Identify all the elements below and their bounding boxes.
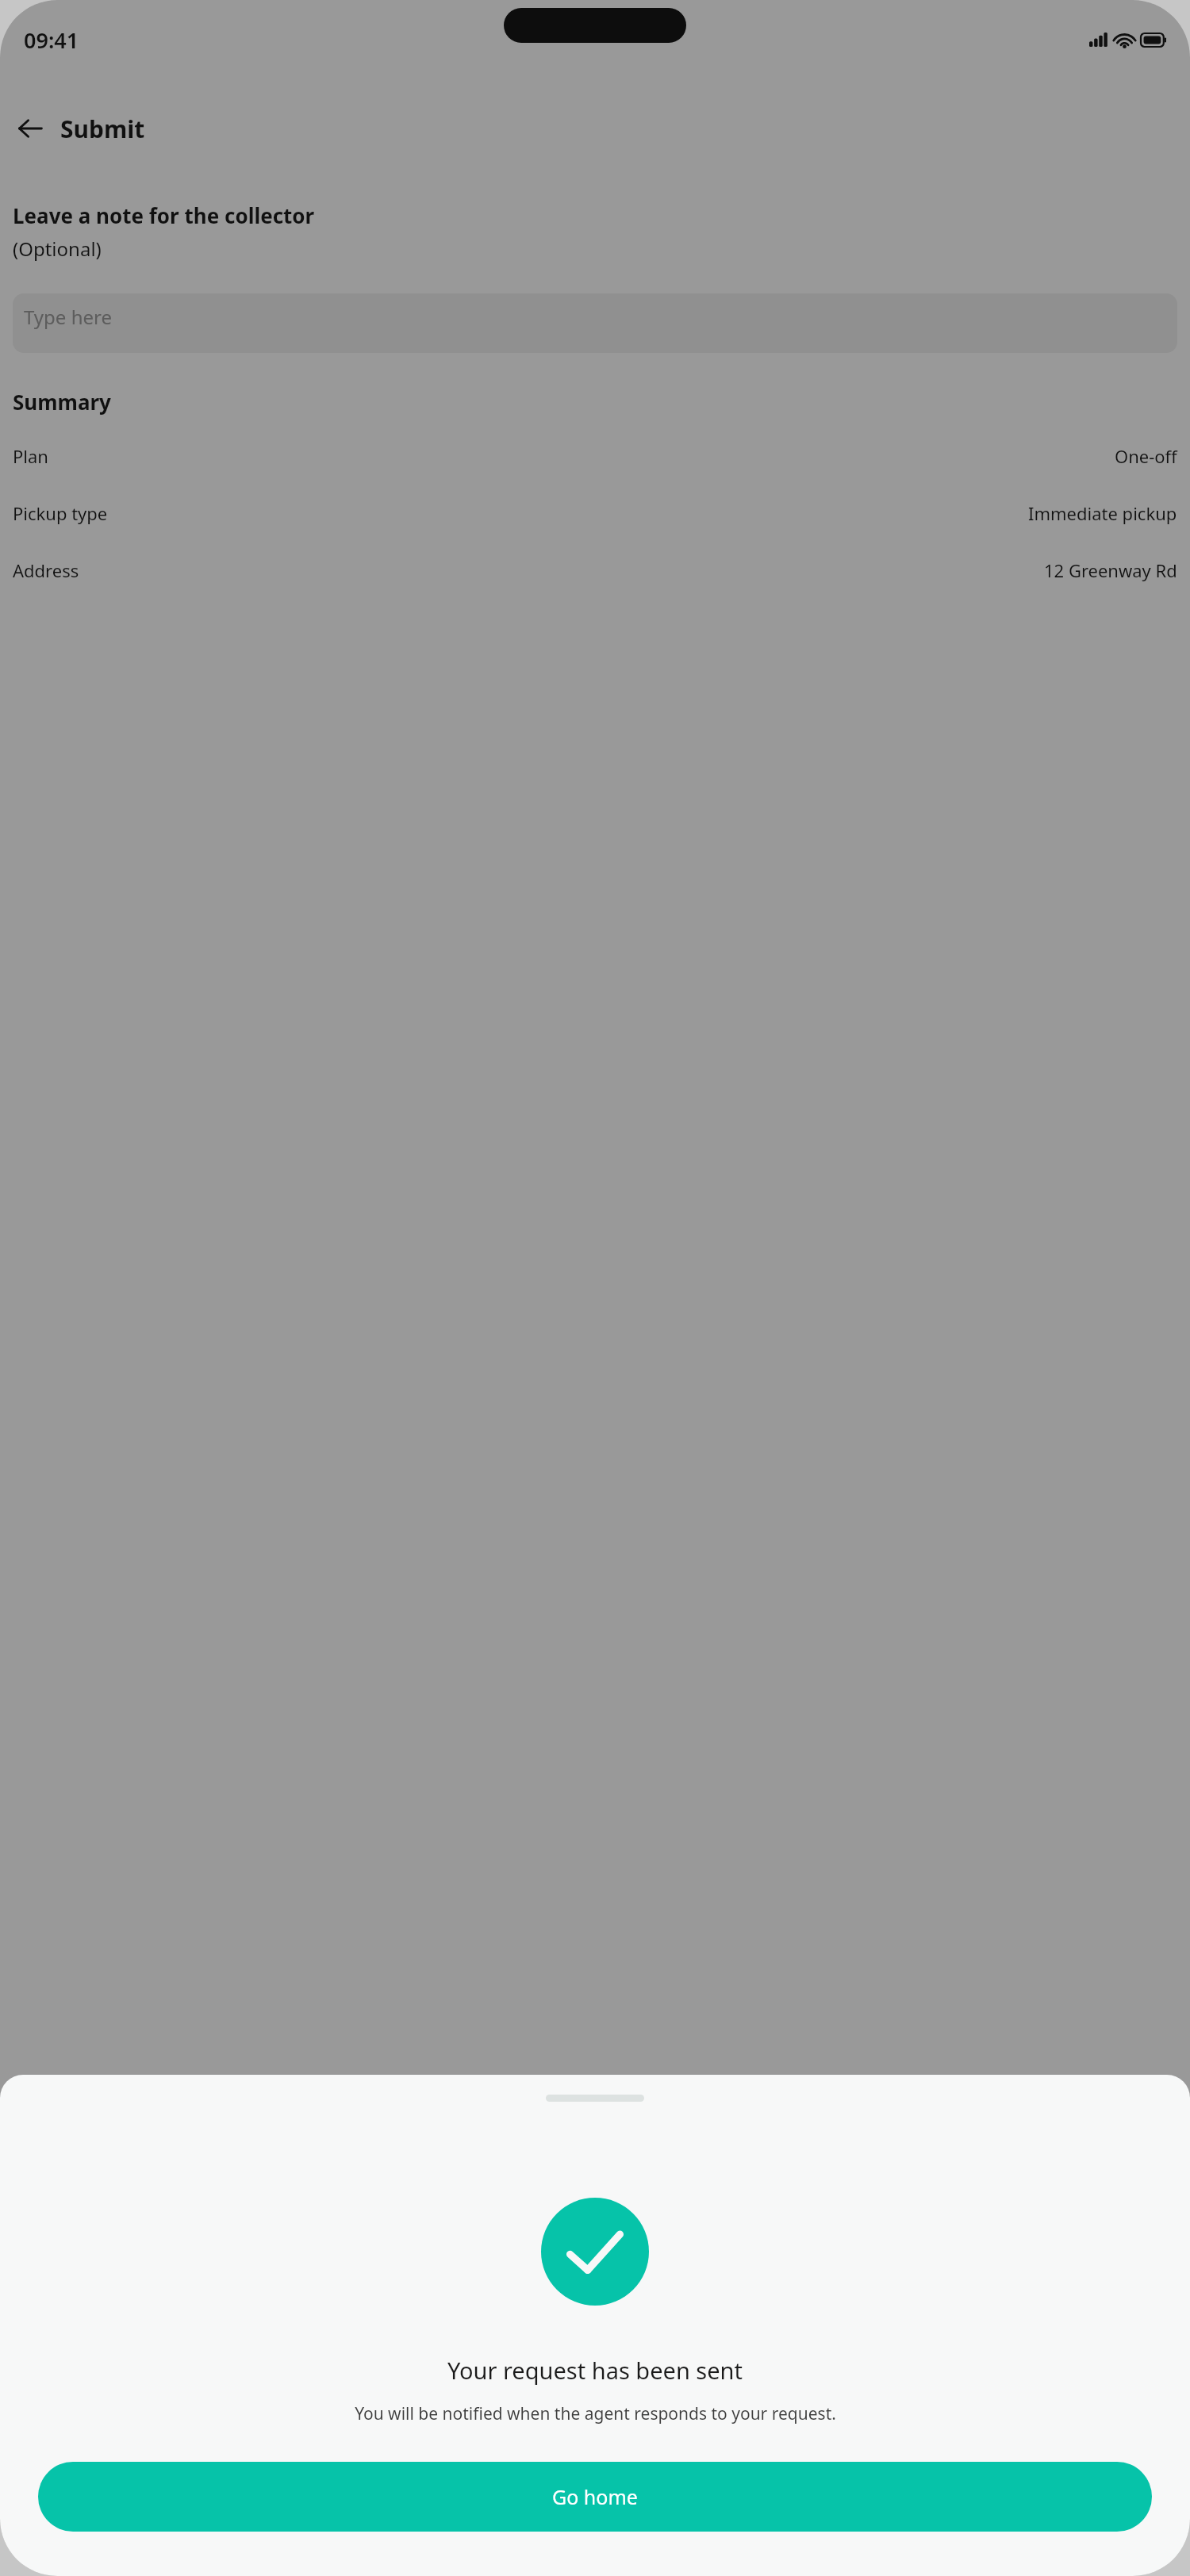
button[interactable]: Back — [13, 111, 48, 146]
button[interactable]: Go home — [38, 2462, 1152, 2532]
staticText: (Optional) — [13, 236, 102, 262]
staticText: One-off — [1115, 444, 1177, 468]
staticText: Type here — [24, 304, 112, 330]
staticText: Submit — [60, 113, 145, 145]
staticText: Address — [13, 558, 79, 582]
staticText: 12 Greenway Rd — [1044, 558, 1177, 582]
staticText: Plan — [13, 444, 48, 468]
button[interactable]: Type here — [13, 293, 1177, 353]
staticText: Go home — [552, 2483, 638, 2510]
staticText: Immediate pickup — [1028, 501, 1177, 525]
staticText: Summary — [13, 388, 111, 416]
staticText: 09:41 — [24, 25, 79, 55]
staticText: Your request has been sent — [447, 2355, 743, 2386]
staticText: Pickup type — [13, 501, 108, 525]
staticText: Leave a note for the collector — [13, 201, 315, 229]
staticText: You will be notified when the agent resp… — [355, 2402, 836, 2425]
